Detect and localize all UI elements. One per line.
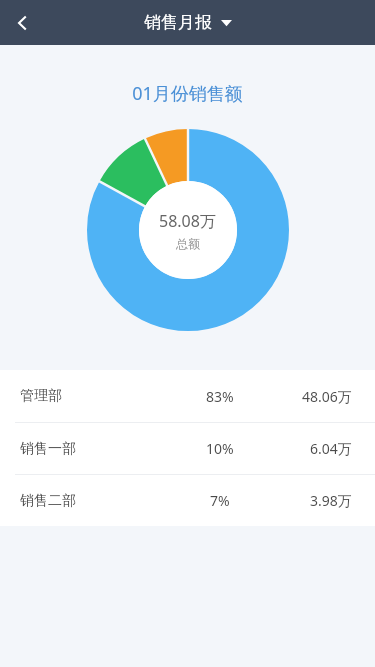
staticText: 10% [206,439,234,458]
staticText: 58.08万 [159,210,216,232]
staticText: 总额 [176,236,200,251]
button[interactable]: 销售月报 [144,12,232,33]
button[interactable]: 销售一部 [0,423,375,474]
staticText: 48.06万 [302,387,352,406]
button[interactable]: 管理部 [0,370,375,422]
button[interactable]: 销售二部 [0,475,375,526]
staticText: 7% [210,491,230,510]
staticText: 6.04万 [310,439,352,458]
staticText: 01月份销售额 [0,81,375,106]
staticText: 销售月报 [144,12,212,33]
staticText: 销售二部 [20,492,76,510]
staticText: 83% [206,387,234,406]
button[interactable]: Back [0,0,46,45]
staticText: 销售一部 [20,440,76,458]
staticText: 3.98万 [310,491,352,510]
staticText: 管理部 [20,387,62,405]
